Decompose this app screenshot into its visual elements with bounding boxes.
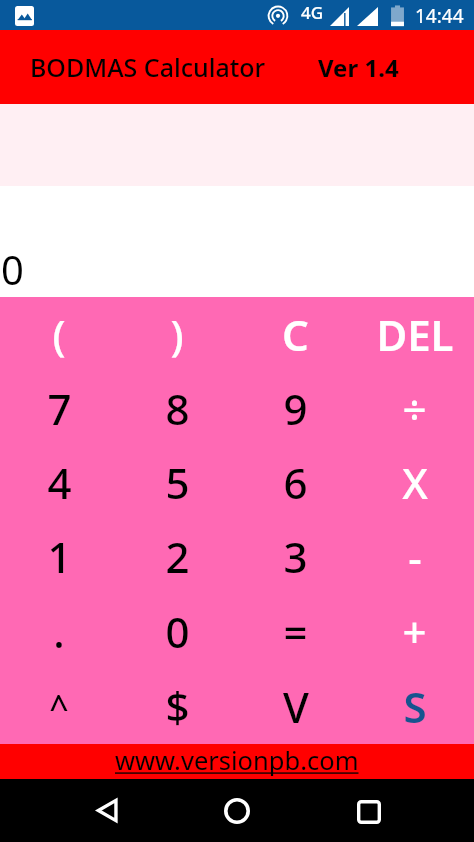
staticText: Ver 1.4 [318,51,399,84]
button[interactable]: ( [0,297,118,371]
button[interactable]: 6 [236,445,355,519]
button[interactable]: 3 [236,519,355,594]
button[interactable]: www.versionpb.com [0,744,474,779]
staticText: BODMAS Calculator [30,50,266,84]
button[interactable]: = [236,594,355,669]
staticText: DEL [376,306,454,363]
staticText: 9 [283,380,308,437]
button[interactable]: 7 [0,371,118,445]
button[interactable]: 1 [0,519,118,594]
staticText: + [402,603,427,660]
staticText: ( [52,306,66,363]
button[interactable]: V [236,669,355,744]
button[interactable]: 8 [118,371,236,445]
button[interactable]: 4 [0,445,118,519]
staticText: $ [165,678,190,735]
button[interactable]: C [236,297,355,371]
staticText: 3 [283,528,308,585]
button[interactable]: 2 [118,519,236,594]
button[interactable]: + [355,594,474,669]
staticText: 6 [283,454,308,511]
staticText: . [53,603,65,660]
button[interactable]: S [355,669,474,744]
staticText: www.versionpb.com [115,743,359,778]
staticText: 0 [165,603,190,660]
button[interactable]: 0 [118,594,236,669]
staticText: X [402,454,428,511]
button[interactable]: DEL [355,297,474,371]
button[interactable]: $ [118,669,236,744]
staticText: 7 [47,380,72,437]
staticText: 0 [1,242,24,296]
staticText: - [408,528,422,585]
button[interactable]: 5 [118,445,236,519]
button[interactable]: Back [83,786,131,834]
staticText: 4 [47,454,72,511]
staticText: V [283,678,309,735]
staticText: = [283,603,308,660]
staticText: 4G [301,1,324,24]
staticText: ) [170,306,184,363]
button[interactable]: ) [118,297,236,371]
button[interactable]: ^ [0,669,118,744]
staticText: 14:44 [415,3,464,29]
button[interactable]: ÷ [355,371,474,445]
button[interactable]: Recent apps [345,788,393,836]
staticText: ^ [49,684,69,730]
staticText: S [403,678,427,735]
staticText: 5 [165,454,190,511]
button[interactable]: - [355,519,474,594]
staticText: 1 [47,528,72,585]
staticText: C [282,306,309,363]
button[interactable]: X [355,445,474,519]
button[interactable]: 9 [236,371,355,445]
staticText: ÷ [402,380,427,437]
staticText: 8 [165,380,190,437]
button[interactable]: Home [213,787,261,835]
button[interactable]: . [0,594,118,669]
staticText: 2 [165,528,190,585]
